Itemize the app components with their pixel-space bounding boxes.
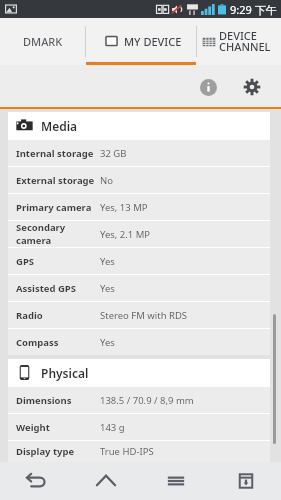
button[interactable]: Weight <box>8 414 270 440</box>
button[interactable]: Information <box>193 72 223 102</box>
staticText: Media <box>41 118 78 134</box>
staticText: Internal storage <box>16 147 100 160</box>
staticText: Yes <box>100 282 115 295</box>
staticText: Yes <box>100 255 115 268</box>
staticText: Primary camera <box>16 201 100 214</box>
button[interactable]: Menu <box>141 462 211 500</box>
staticText: Assisted GPS <box>16 282 100 295</box>
staticText: Yes, 2.1 MP <box>100 228 151 241</box>
button[interactable]: Compass <box>8 329 270 355</box>
staticText: External storage <box>16 174 100 187</box>
staticText: 9:29 下午 <box>230 2 277 17</box>
button[interactable]: DEVICE CHANNEL <box>197 18 281 65</box>
button[interactable]: Back <box>0 462 71 500</box>
staticText: Compass <box>16 336 100 349</box>
button[interactable]: GPS <box>8 248 270 274</box>
staticText: DEVICE CHANNEL <box>219 28 271 55</box>
button[interactable]: Dimensions <box>8 387 270 413</box>
staticText: 138.5 / 70.9 / 8,9 mm <box>100 394 194 407</box>
button[interactable]: Display type <box>8 441 270 462</box>
button[interactable]: External storage <box>8 167 270 193</box>
button[interactable]: Internal storage <box>8 140 270 166</box>
staticText: Stereo FM with RDS <box>100 309 188 322</box>
staticText: DMARK <box>23 34 63 49</box>
button[interactable]: Assisted GPS <box>8 275 270 301</box>
staticText: True HD-IPS <box>100 445 154 458</box>
staticText: GPS <box>16 255 100 268</box>
staticText: Weight <box>16 421 100 434</box>
staticText: MY DEVICE <box>124 34 182 49</box>
staticText: Physical <box>41 365 89 381</box>
button[interactable]: MY DEVICE <box>86 18 196 65</box>
staticText: 143 g <box>100 421 125 434</box>
staticText: Secondary camera <box>16 221 100 247</box>
staticText: Yes, 13 MP <box>100 201 148 214</box>
button[interactable]: Settings <box>237 72 267 102</box>
staticText: No <box>100 174 113 187</box>
button[interactable]: Secondary camera <box>8 221 270 247</box>
button[interactable]: Primary camera <box>8 194 270 220</box>
staticText: Display type <box>16 445 100 458</box>
staticText: 32 GB <box>100 147 127 160</box>
staticText: Dimensions <box>16 394 100 407</box>
button[interactable]: Home <box>71 462 141 500</box>
button[interactable]: Radio <box>8 302 270 328</box>
button[interactable]: DMARK <box>0 18 85 65</box>
staticText: Yes <box>100 336 115 349</box>
button[interactable]: Hide keyboard <box>211 462 281 500</box>
staticText: Radio <box>16 309 100 322</box>
